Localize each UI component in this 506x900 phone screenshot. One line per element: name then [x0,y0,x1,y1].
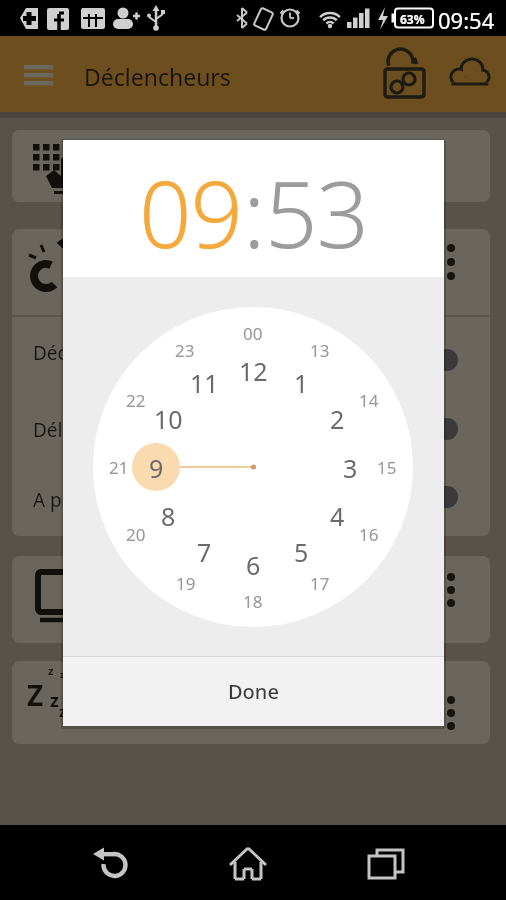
button[interactable] [12,556,490,643]
button[interactable] [83,835,143,890]
staticText: : [243,150,265,275]
staticText: 18 [243,590,263,613]
staticText: 13 [310,339,330,362]
staticText: 22 [126,389,146,412]
staticText: 12 [239,354,268,386]
staticText: 20 [126,523,146,546]
button[interactable]: Done [63,657,444,726]
staticText: Déclencheurs [84,61,231,92]
staticText: 19 [176,572,196,595]
staticText: 63% [400,11,425,27]
staticText: 21 [109,456,129,479]
button[interactable] [16,56,64,96]
staticText: 7 [197,535,212,567]
button[interactable] [12,229,490,536]
button[interactable] [444,54,496,98]
staticText: Z [27,676,44,714]
staticText: Déclenché [33,340,126,366]
staticText: 23 [175,339,195,362]
staticText: Done [228,678,279,705]
staticText: 3 [343,451,358,483]
staticText: z [48,663,54,678]
staticText: 11 [190,366,219,398]
button[interactable] [12,130,490,202]
staticText: 09 [139,150,243,275]
staticText: 1 [294,366,309,398]
staticText: 17 [310,572,330,595]
staticText: 53 [265,150,369,275]
button[interactable] [363,835,423,890]
staticText: z [50,688,59,713]
staticText: z [60,668,65,680]
staticText: 14 [359,389,379,412]
staticText: 16 [359,523,379,546]
button[interactable] [12,661,490,744]
staticText: 9 [149,451,164,483]
staticText: 00 [243,322,263,345]
button[interactable] [223,835,283,890]
staticText: 15 [377,456,397,479]
staticText: 8 [161,499,176,531]
staticText: 2 [330,402,345,434]
staticText: A proximité [33,487,136,513]
staticText: 5 [294,535,309,567]
staticText: 10 [154,402,183,434]
staticText: 6 [246,548,261,580]
staticText: z [59,702,66,721]
staticText: Délai avant [33,417,133,443]
staticText: 4 [330,499,345,531]
button[interactable] [378,48,432,100]
staticText: 09:54 [438,5,495,35]
